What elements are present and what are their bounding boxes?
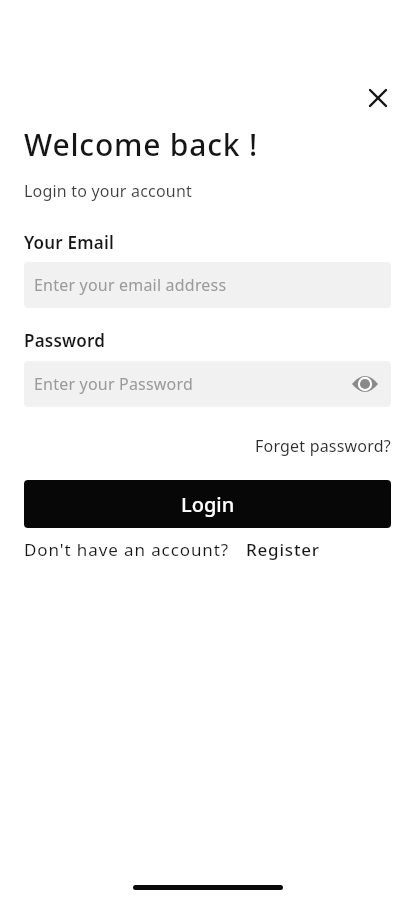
- staticText: Forget password?: [255, 435, 391, 457]
- button[interactable]: Enter your Password: [24, 361, 391, 407]
- staticText: Login: [181, 491, 235, 518]
- staticText: Don't have an account?: [24, 538, 230, 561]
- button[interactable]: Enter your email address: [24, 262, 391, 308]
- button[interactable]: Forget password?: [255, 435, 391, 457]
- staticText: Register: [246, 538, 320, 561]
- button[interactable]: [351, 370, 379, 398]
- button[interactable]: Login: [24, 480, 391, 528]
- staticText: Password: [24, 329, 106, 352]
- button[interactable]: [356, 76, 400, 120]
- button[interactable]: Register: [246, 538, 320, 561]
- staticText: Login to your account: [24, 180, 192, 202]
- staticText: Enter your email address: [34, 274, 227, 296]
- staticText: Welcome back !: [24, 124, 258, 165]
- staticText: Your Email: [24, 231, 114, 254]
- staticText: Enter your Password: [34, 373, 194, 395]
